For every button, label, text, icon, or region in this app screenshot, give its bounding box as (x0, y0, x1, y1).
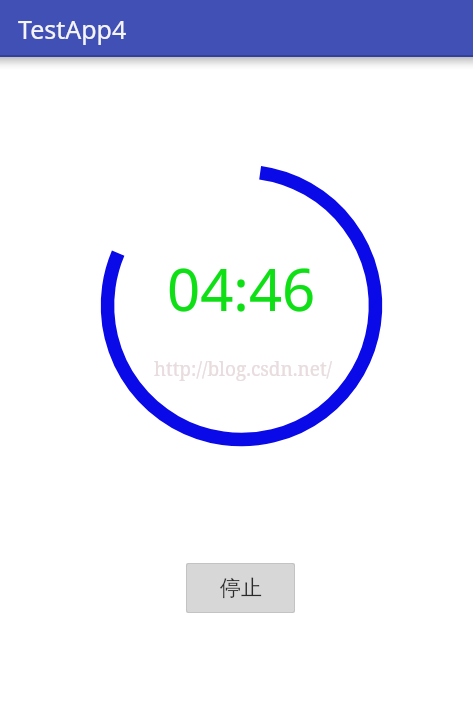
staticText: TestApp4 (18, 12, 127, 46)
staticText: http://blog.csdn.net/ (110, 356, 376, 382)
button[interactable]: 停止 (187, 564, 294, 612)
staticText: 停止 (220, 575, 262, 601)
staticText: 04:46 (167, 249, 316, 328)
